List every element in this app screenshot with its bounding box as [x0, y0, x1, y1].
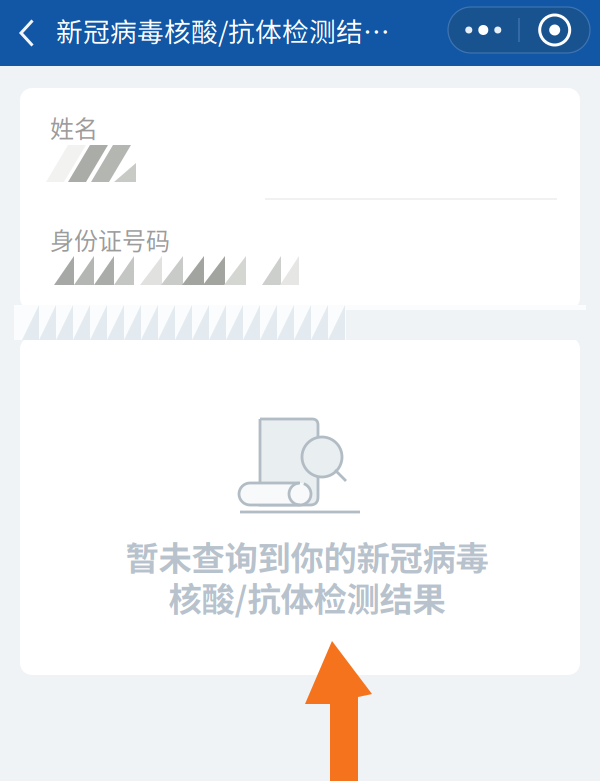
button[interactable]: Back [3, 0, 51, 66]
staticText: 新冠病毒核酸/抗体检测结… [56, 11, 390, 49]
staticText: 姓名 [50, 110, 98, 145]
staticText: 核酸/抗体检测结果 [168, 573, 445, 621]
staticText: 身份证号码 [50, 222, 170, 257]
button[interactable]: Close mini program [520, 7, 590, 53]
button[interactable]: More options [448, 7, 518, 53]
staticText: 暂未查询到你的新冠病毒 [125, 532, 488, 580]
